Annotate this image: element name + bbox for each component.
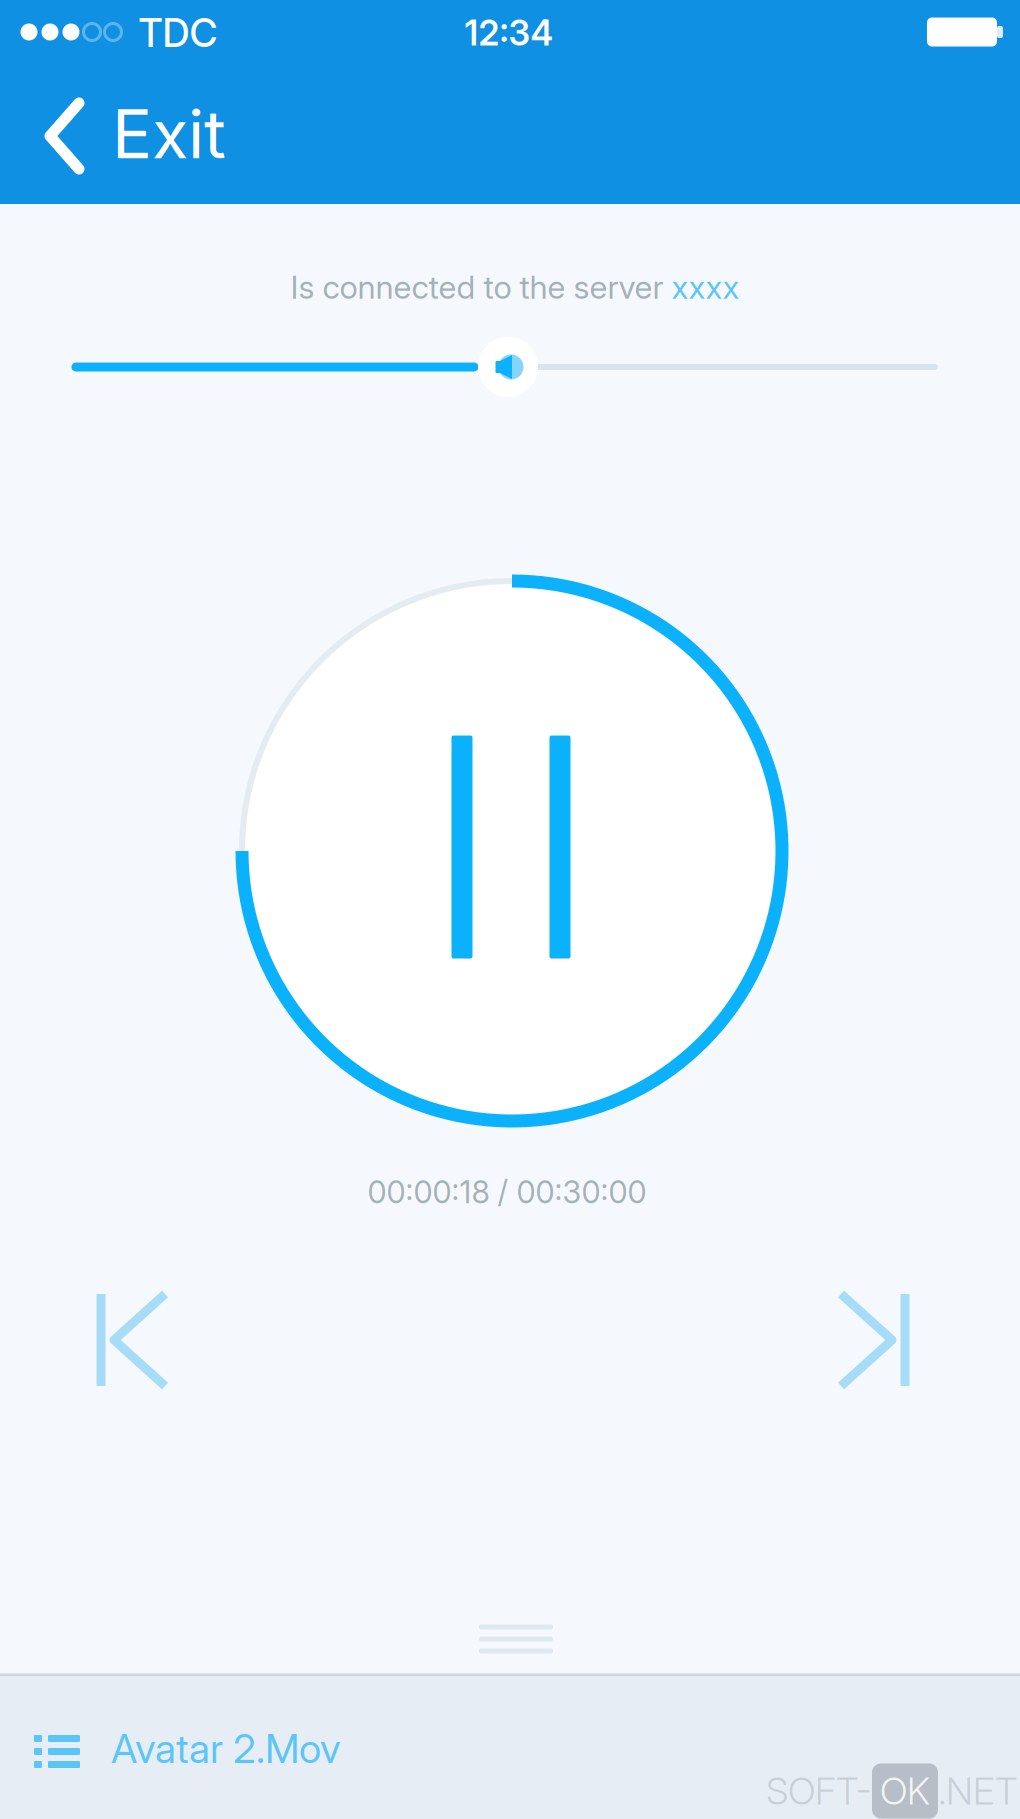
- button[interactable]: Show playlist: [426, 1599, 606, 1679]
- button[interactable]: Previous track: [42, 1255, 222, 1425]
- staticText: .NET: [938, 1768, 1018, 1814]
- staticText: OK: [880, 1768, 930, 1814]
- button[interactable]: Next track: [784, 1255, 964, 1425]
- staticText: 12:34: [464, 12, 553, 54]
- button[interactable]: Exit: [0, 64, 260, 204]
- staticText: Avatar 2.Mov: [111, 1724, 341, 1773]
- button[interactable]: Volume: [36, 322, 974, 412]
- staticText: TDC: [138, 10, 217, 56]
- staticText: Is connected to the server: [290, 268, 671, 306]
- button[interactable]: Pause: [236, 575, 788, 1127]
- button[interactable]: Avatar 2.Mov: [0, 1676, 1020, 1819]
- staticText: Exit: [112, 94, 226, 174]
- staticText: 00:00:18 / 00:30:00: [367, 1173, 646, 1210]
- staticText: xxxx: [671, 268, 739, 306]
- staticText: SOFT-: [766, 1768, 872, 1814]
